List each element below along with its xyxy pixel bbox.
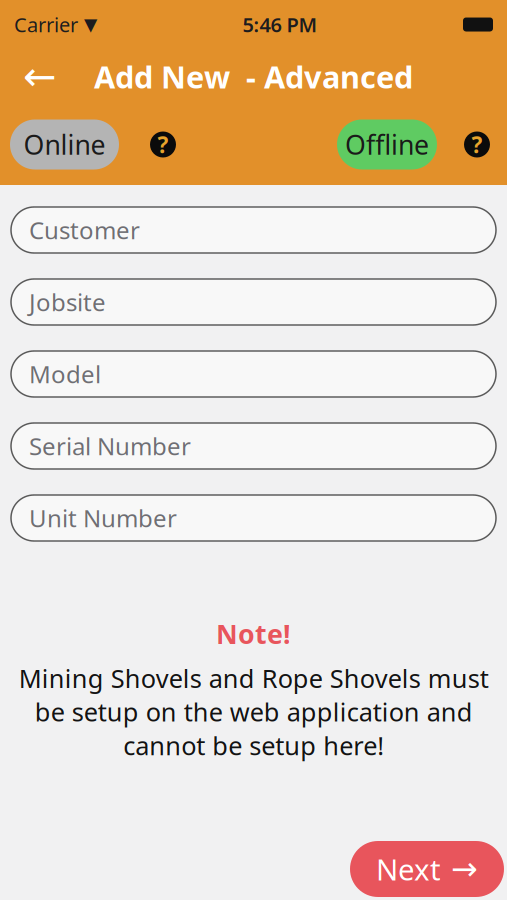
staticText: ▼ (78, 15, 97, 34)
staticText: Next (376, 849, 441, 888)
staticText: Mining Shovels and Rope Shovels must be … (18, 661, 488, 762)
staticText: ? (471, 129, 482, 159)
staticText: ← (23, 54, 57, 99)
button[interactable]: Offline help (461, 128, 493, 160)
staticText: ? (157, 129, 168, 159)
button[interactable]: Next (350, 841, 504, 897)
staticText: Note! (216, 616, 291, 651)
staticText: Carrier (14, 11, 78, 38)
staticText: Unit Number (29, 502, 177, 534)
staticText: 5:46 PM (242, 11, 317, 38)
staticText: Model (29, 358, 101, 390)
button[interactable]: Serial Number (11, 423, 496, 469)
button[interactable]: Online (10, 119, 119, 169)
staticText: Serial Number (29, 430, 191, 462)
button[interactable]: Customer (11, 207, 496, 253)
button[interactable]: Back (12, 48, 68, 104)
staticText: Jobsite (29, 286, 106, 318)
staticText: Online (23, 127, 105, 162)
button[interactable]: Online help (147, 128, 179, 160)
staticText: Customer (29, 214, 140, 246)
button[interactable]: Jobsite (11, 279, 496, 325)
staticText: → (451, 851, 478, 887)
staticText: Add New - Advanced (94, 56, 413, 97)
button[interactable]: Model (11, 351, 496, 397)
staticText: Offline (345, 127, 429, 162)
button[interactable]: Offline (337, 119, 437, 169)
button[interactable]: Unit Number (11, 495, 496, 541)
